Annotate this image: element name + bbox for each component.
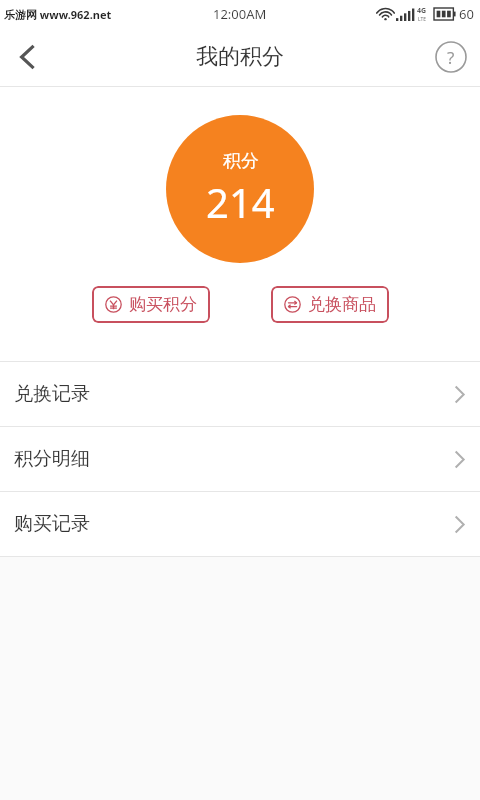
staticText: LTE <box>418 16 427 23</box>
staticText: 我的积分 <box>196 43 284 71</box>
button[interactable]: 兑换商品 <box>271 286 389 323</box>
staticText: 兑换记录 <box>14 382 90 406</box>
staticText: 购买积分 <box>129 294 197 315</box>
button[interactable]: 购买积分 <box>92 286 210 323</box>
button[interactable]: 积分明细 <box>0 427 480 491</box>
staticText: 乐游网 www.962.net <box>4 7 112 22</box>
staticText: 购买记录 <box>14 512 90 536</box>
button[interactable]: Help <box>435 41 467 73</box>
button[interactable]: 购买记录 <box>0 492 480 556</box>
staticText: 积分 <box>223 150 259 173</box>
button[interactable]: Back <box>0 29 56 85</box>
staticText: 积分明细 <box>14 447 90 471</box>
button[interactable]: 兑换记录 <box>0 362 480 426</box>
staticText: 兑换商品 <box>308 294 376 315</box>
staticText: 4G <box>417 6 427 16</box>
staticText: 60 <box>459 5 474 23</box>
staticText: 12:00AM <box>213 5 267 23</box>
staticText: 214 <box>206 175 275 229</box>
button[interactable]: 积分 <box>166 115 314 263</box>
staticText: ? <box>447 46 455 69</box>
